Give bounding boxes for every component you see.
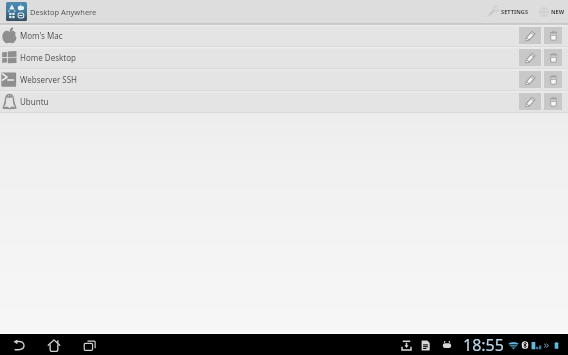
other: New xyxy=(538,6,550,18)
button[interactable]: Edit xyxy=(519,27,541,44)
other: Battery xyxy=(552,341,561,350)
staticText: NEW xyxy=(551,8,565,16)
other: More icons xyxy=(543,342,550,349)
button[interactable]: Edit xyxy=(519,93,541,110)
button[interactable]: Edit xyxy=(519,49,541,66)
button[interactable]: Delete xyxy=(544,93,562,110)
button[interactable]: Delete xyxy=(544,27,562,44)
other: Wi-Fi xyxy=(508,340,519,351)
staticText: Home Desktop xyxy=(20,52,76,63)
button[interactable]: Delete xyxy=(544,71,562,88)
button[interactable]: Home xyxy=(46,337,62,353)
staticText: Webserver SSH xyxy=(20,74,78,85)
button[interactable]: New xyxy=(537,0,566,23)
button[interactable]: Edit xyxy=(519,71,541,88)
other: Settings xyxy=(486,5,500,19)
button[interactable]: Recent apps xyxy=(82,337,98,353)
button[interactable]: Mom's Mac xyxy=(0,25,568,46)
staticText: Ubuntu xyxy=(20,96,49,107)
staticText: SETTINGS xyxy=(501,8,529,16)
button[interactable]: Back xyxy=(10,337,26,353)
other: Document xyxy=(418,338,433,353)
staticText: Desktop Anywhere xyxy=(30,7,97,17)
button[interactable]: Delete xyxy=(544,49,562,66)
button[interactable]: Home Desktop xyxy=(0,47,568,68)
button[interactable]: Ubuntu xyxy=(0,91,568,112)
staticText: Mom's Mac xyxy=(20,30,63,41)
other: Signal xyxy=(531,340,542,351)
button[interactable]: Webserver SSH xyxy=(0,69,568,90)
staticText: 18:55 xyxy=(463,334,504,355)
other: Notification xyxy=(440,338,454,352)
button[interactable]: Settings xyxy=(485,0,530,23)
other: Downloads xyxy=(399,338,414,353)
other: Bluetooth xyxy=(521,341,529,349)
